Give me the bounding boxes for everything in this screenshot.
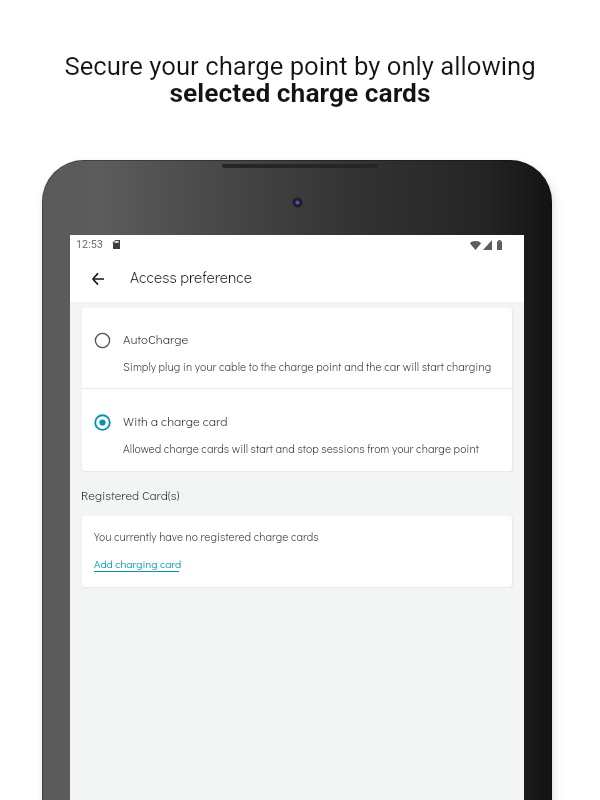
staticText: Simply plug in your cable to the charge … [123, 359, 492, 374]
button[interactable]: With a charge card [82, 390, 512, 470]
staticText: AutoCharge [123, 330, 189, 347]
staticText: You currently have no registered charge … [94, 529, 319, 544]
staticText: Registered Card(s) [81, 487, 180, 504]
button[interactable]: Add charging card [94, 554, 182, 568]
staticText: With a charge card [123, 412, 228, 429]
button[interactable]: Back [82, 263, 113, 294]
staticText: selected charge cards [169, 78, 431, 109]
staticText: Access preference [130, 267, 252, 287]
staticText: Allowed charge cards will start and stop… [123, 441, 479, 456]
staticText: Secure your charge point by only allowin… [64, 51, 536, 81]
button[interactable]: AutoCharge [82, 308, 512, 388]
staticText: Add charging card [94, 556, 182, 570]
staticText: 12:53 [76, 238, 103, 251]
